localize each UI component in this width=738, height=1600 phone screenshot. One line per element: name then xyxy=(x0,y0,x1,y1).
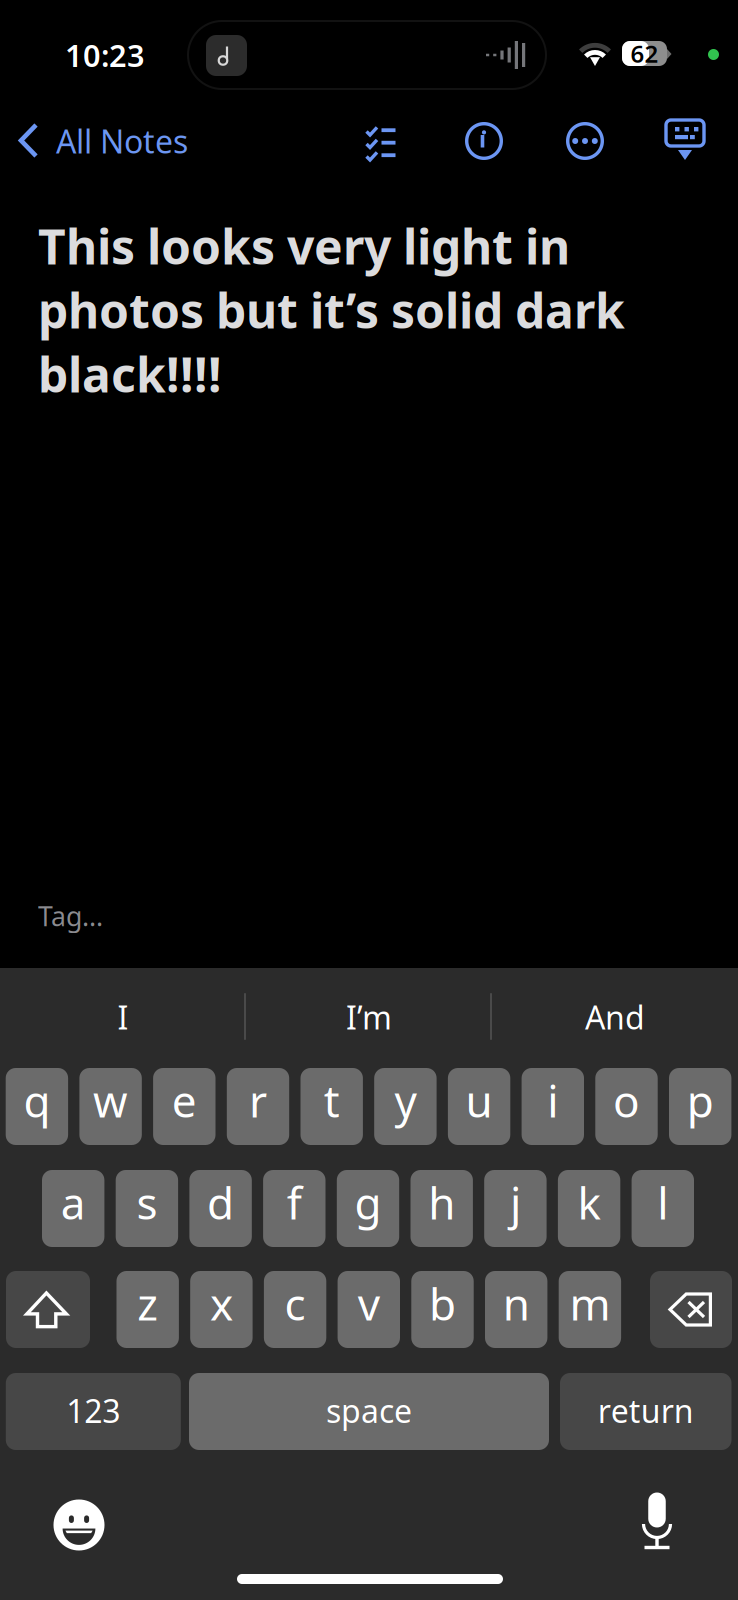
staticText: space xyxy=(326,1389,412,1432)
staticText: q xyxy=(23,1071,50,1130)
staticText: And xyxy=(585,996,645,1038)
staticText: o xyxy=(613,1071,640,1130)
button[interactable]: n xyxy=(485,1271,547,1348)
staticText: f xyxy=(287,1173,302,1232)
button[interactable]: Hide Keyboard xyxy=(658,114,712,168)
button[interactable]: h xyxy=(410,1170,473,1247)
staticText: Tag... xyxy=(38,898,103,934)
button[interactable]: Checklist xyxy=(354,114,408,168)
button[interactable]: l xyxy=(632,1170,694,1247)
staticText: y xyxy=(394,1071,416,1130)
button[interactable]: Info xyxy=(457,114,511,168)
staticText: k xyxy=(578,1173,601,1232)
button[interactable]: y xyxy=(374,1068,437,1145)
staticText: i xyxy=(547,1071,558,1130)
staticText: 62 xyxy=(630,38,658,69)
staticText: photos but it’s solid dark xyxy=(38,278,625,342)
staticText: h xyxy=(428,1173,455,1232)
button[interactable]: e xyxy=(153,1068,215,1145)
button[interactable]: p xyxy=(669,1068,731,1145)
button[interactable]: return xyxy=(560,1373,731,1450)
staticText: j xyxy=(510,1173,521,1232)
button[interactable]: I’m xyxy=(246,982,492,1052)
button[interactable]: Shift xyxy=(6,1271,90,1348)
button[interactable]: g xyxy=(337,1170,399,1247)
staticText: d xyxy=(207,1173,234,1232)
staticText: 123 xyxy=(66,1389,120,1432)
staticText: r xyxy=(249,1071,267,1130)
staticText: a xyxy=(61,1173,86,1232)
staticText: I’m xyxy=(346,996,392,1038)
button[interactable]: Dictate xyxy=(622,1487,692,1557)
button[interactable]: m xyxy=(559,1271,621,1348)
button[interactable]: All Notes xyxy=(17,115,223,167)
button[interactable]: i xyxy=(522,1068,584,1145)
staticText: m xyxy=(569,1274,610,1333)
staticText: e xyxy=(172,1071,197,1130)
staticText: c xyxy=(285,1274,306,1333)
staticText: return xyxy=(598,1389,694,1432)
button[interactable]: Delete xyxy=(650,1271,732,1348)
staticText: g xyxy=(354,1173,381,1232)
staticText: All Notes xyxy=(56,120,188,162)
button[interactable]: b xyxy=(411,1271,474,1348)
staticText: x xyxy=(210,1274,233,1333)
staticText: l xyxy=(657,1173,668,1232)
staticText: u xyxy=(466,1071,493,1130)
button[interactable]: u xyxy=(448,1068,510,1145)
button[interactable]: z xyxy=(116,1271,179,1348)
button[interactable]: d xyxy=(189,1170,252,1247)
staticText: z xyxy=(137,1274,158,1333)
button[interactable]: s xyxy=(116,1170,178,1247)
staticText: s xyxy=(136,1173,157,1232)
button[interactable]: r xyxy=(227,1068,289,1145)
button[interactable]: f xyxy=(263,1170,325,1247)
button[interactable]: t xyxy=(300,1068,363,1145)
button[interactable]: 123 xyxy=(6,1373,181,1450)
staticText: I xyxy=(117,996,128,1038)
staticText: This looks very light in xyxy=(38,214,570,278)
button[interactable]: More xyxy=(558,114,612,168)
button[interactable]: j xyxy=(484,1170,547,1247)
staticText: w xyxy=(93,1071,128,1130)
button[interactable]: Emoji xyxy=(44,1490,114,1560)
button[interactable]: q xyxy=(6,1068,68,1145)
button[interactable]: k xyxy=(558,1170,620,1247)
button[interactable]: c xyxy=(264,1271,326,1348)
staticText: v xyxy=(358,1274,380,1333)
staticText: black!!!! xyxy=(38,342,222,406)
staticText: p xyxy=(687,1071,714,1130)
staticText: 10:23 xyxy=(65,35,145,75)
staticText: b xyxy=(429,1274,456,1333)
button[interactable]: I xyxy=(0,982,246,1052)
staticText: n xyxy=(503,1274,530,1333)
button[interactable]: w xyxy=(79,1068,142,1145)
button[interactable]: x xyxy=(190,1271,253,1348)
button[interactable]: space xyxy=(189,1373,549,1450)
button[interactable]: a xyxy=(42,1170,104,1247)
staticText: t xyxy=(324,1071,340,1130)
button[interactable]: o xyxy=(595,1068,658,1145)
button[interactable]: v xyxy=(338,1271,400,1348)
button[interactable]: And xyxy=(492,982,738,1052)
